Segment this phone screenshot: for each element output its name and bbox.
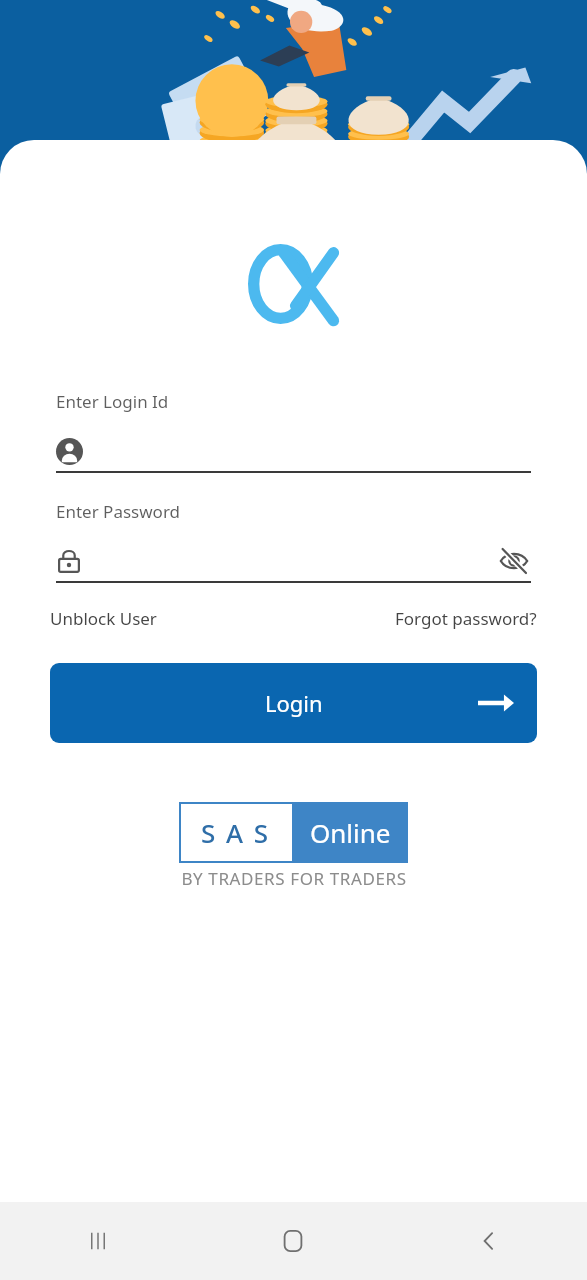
staticText: Online — [310, 815, 391, 850]
button[interactable]: Home — [195, 1202, 391, 1280]
staticText: BY TRADERS FOR TRADERS — [181, 867, 407, 890]
staticText: S A S — [201, 815, 271, 850]
staticText: Enter Password — [56, 500, 181, 523]
button[interactable]: Forgot password? — [395, 603, 537, 634]
button[interactable]: Login — [50, 663, 537, 743]
staticText: Forgot password? — [395, 607, 537, 630]
button[interactable]: Back — [391, 1202, 587, 1280]
staticText: Unblock User — [50, 607, 157, 630]
button[interactable]: Unblock User — [50, 603, 157, 634]
staticText: Enter Login Id — [56, 390, 169, 413]
staticText: Login — [265, 688, 323, 718]
button[interactable]: Show password — [497, 544, 531, 578]
button[interactable]: Recents — [0, 1202, 195, 1280]
